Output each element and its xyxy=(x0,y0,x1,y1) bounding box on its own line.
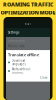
staticText: ROAMING TRAFFIC xyxy=(3,1,53,8)
staticText: Works without internet xyxy=(11,67,30,75)
staticText: Download languages xyxy=(11,59,25,66)
button[interactable]: Close xyxy=(40,76,48,80)
staticText: Close xyxy=(40,76,48,80)
staticText: 9:41 xyxy=(24,22,31,26)
staticText: Mobile data xyxy=(8,44,24,48)
staticText: Settings xyxy=(8,31,19,34)
staticText: Translate offline xyxy=(8,52,39,57)
staticText: Connection xyxy=(8,39,25,42)
staticText: OPTIMIZATION MODE xyxy=(0,9,55,16)
